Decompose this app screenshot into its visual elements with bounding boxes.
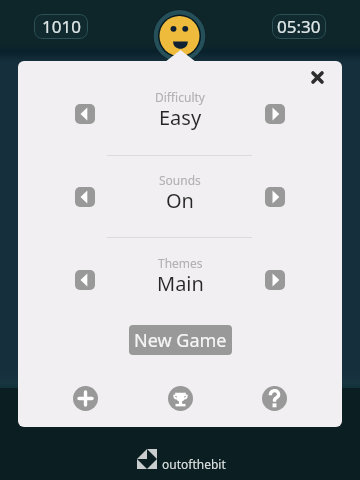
button[interactable]: Previous <box>75 270 95 290</box>
button[interactable]: 1010 <box>34 14 88 39</box>
button[interactable]: Previous <box>75 187 95 207</box>
staticText: Main <box>157 270 204 297</box>
button[interactable]: Next <box>265 187 285 207</box>
button[interactable]: Close <box>305 65 329 89</box>
button[interactable]: Next <box>265 104 285 124</box>
button[interactable]: Previous <box>75 104 95 124</box>
staticText: Easy <box>159 104 202 131</box>
staticText: New Game <box>134 328 227 353</box>
staticText: Sounds <box>159 172 201 188</box>
button[interactable]: Profile <box>153 9 206 62</box>
button[interactable]: Help <box>262 386 287 411</box>
staticText: Difficulty <box>155 89 205 105</box>
button[interactable]: New Game <box>129 325 232 355</box>
staticText: 05:30 <box>277 15 321 38</box>
staticText: On <box>166 187 194 214</box>
button[interactable]: Next <box>265 270 285 290</box>
button[interactable]: 05:30 <box>272 14 326 39</box>
staticText: 1010 <box>42 15 81 38</box>
staticText: outofthebit <box>162 456 226 472</box>
staticText: Themes <box>158 255 203 271</box>
button[interactable]: Add game <box>73 386 98 411</box>
button[interactable]: Leaderboard <box>168 386 193 411</box>
